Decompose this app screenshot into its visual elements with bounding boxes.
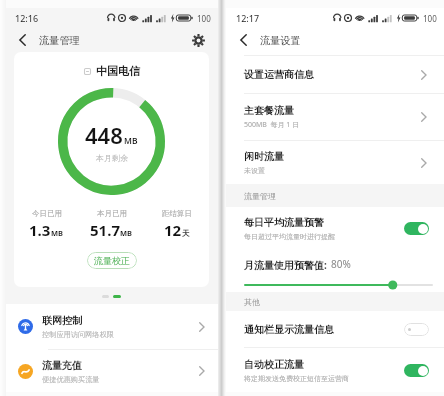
staticText: 本月剩余 (96, 153, 128, 163)
button[interactable]: Toggle on (404, 222, 429, 235)
staticText: 500MB 每月 1 日 (244, 120, 300, 130)
staticText: 12:16 (15, 12, 39, 24)
staticText: 1.3 (29, 220, 51, 240)
staticText: 流量充值 (42, 359, 82, 372)
button[interactable]: 闲时流量 (226, 141, 444, 184)
button[interactable]: Toggle on (404, 364, 429, 377)
staticText: 流量管理 (244, 191, 276, 201)
staticText: 距结算日 (162, 209, 192, 218)
button[interactable]: Back (235, 32, 251, 48)
staticText: 控制应用访问网络权限 (42, 330, 114, 339)
button[interactable]: 流量校正 (87, 252, 137, 269)
button[interactable]: Toggle off (404, 323, 429, 336)
staticText: 80% (331, 257, 351, 271)
staticText: 其他 (244, 297, 260, 307)
staticText: MB (120, 228, 133, 238)
staticText: 本月已用 (97, 209, 127, 218)
staticText: 今日已用 (32, 209, 62, 218)
staticText: 流量校正 (94, 255, 130, 266)
staticText: 自动校正流量 (244, 358, 304, 371)
staticText: 联网控制 (42, 314, 82, 327)
button[interactable]: 主套餐流量 (226, 94, 444, 140)
staticText: 设置运营商信息 (244, 68, 314, 81)
button[interactable]: 联网控制 (5, 304, 218, 349)
button[interactable]: 通知栏显示流量信息 (226, 311, 444, 347)
staticText: 51.7 (90, 220, 120, 240)
staticText: 闲时流量 (244, 150, 284, 163)
button[interactable]: 自动校正流量 (226, 348, 444, 392)
staticText: 中国电信 (96, 64, 140, 78)
button[interactable]: 每日平均流量预警 (226, 207, 444, 250)
staticText: 便捷优惠购买流量 (42, 375, 100, 384)
staticText: 每日超过平均流量时进行提醒 (244, 232, 335, 241)
button[interactable]: 流量充值 (5, 350, 218, 392)
staticText: 天 (182, 229, 190, 238)
staticText: 流量管理 (39, 34, 80, 47)
staticText: 12 (164, 220, 182, 240)
staticText: 主套餐流量 (244, 104, 294, 117)
staticText: 流量设置 (260, 34, 301, 47)
staticText: 将定期发送免费校正短信至运营商 (244, 374, 349, 383)
staticText: 未设置 (244, 166, 265, 175)
staticText: 12:17 (236, 12, 260, 24)
staticText: 通知栏显示流量信息 (244, 323, 334, 336)
button[interactable]: Back (14, 32, 30, 48)
staticText: MB (124, 135, 138, 147)
staticText: MB (51, 228, 64, 238)
staticText: 每日平均流量预警 (244, 216, 324, 229)
staticText: 100 (423, 13, 437, 24)
staticText: 月流量使用预警值: (244, 258, 327, 272)
staticText: 100 (197, 13, 211, 24)
button[interactable]: 设置运营商信息 (226, 56, 444, 93)
staticText: 448 (85, 120, 123, 150)
button[interactable]: Settings (188, 30, 208, 50)
